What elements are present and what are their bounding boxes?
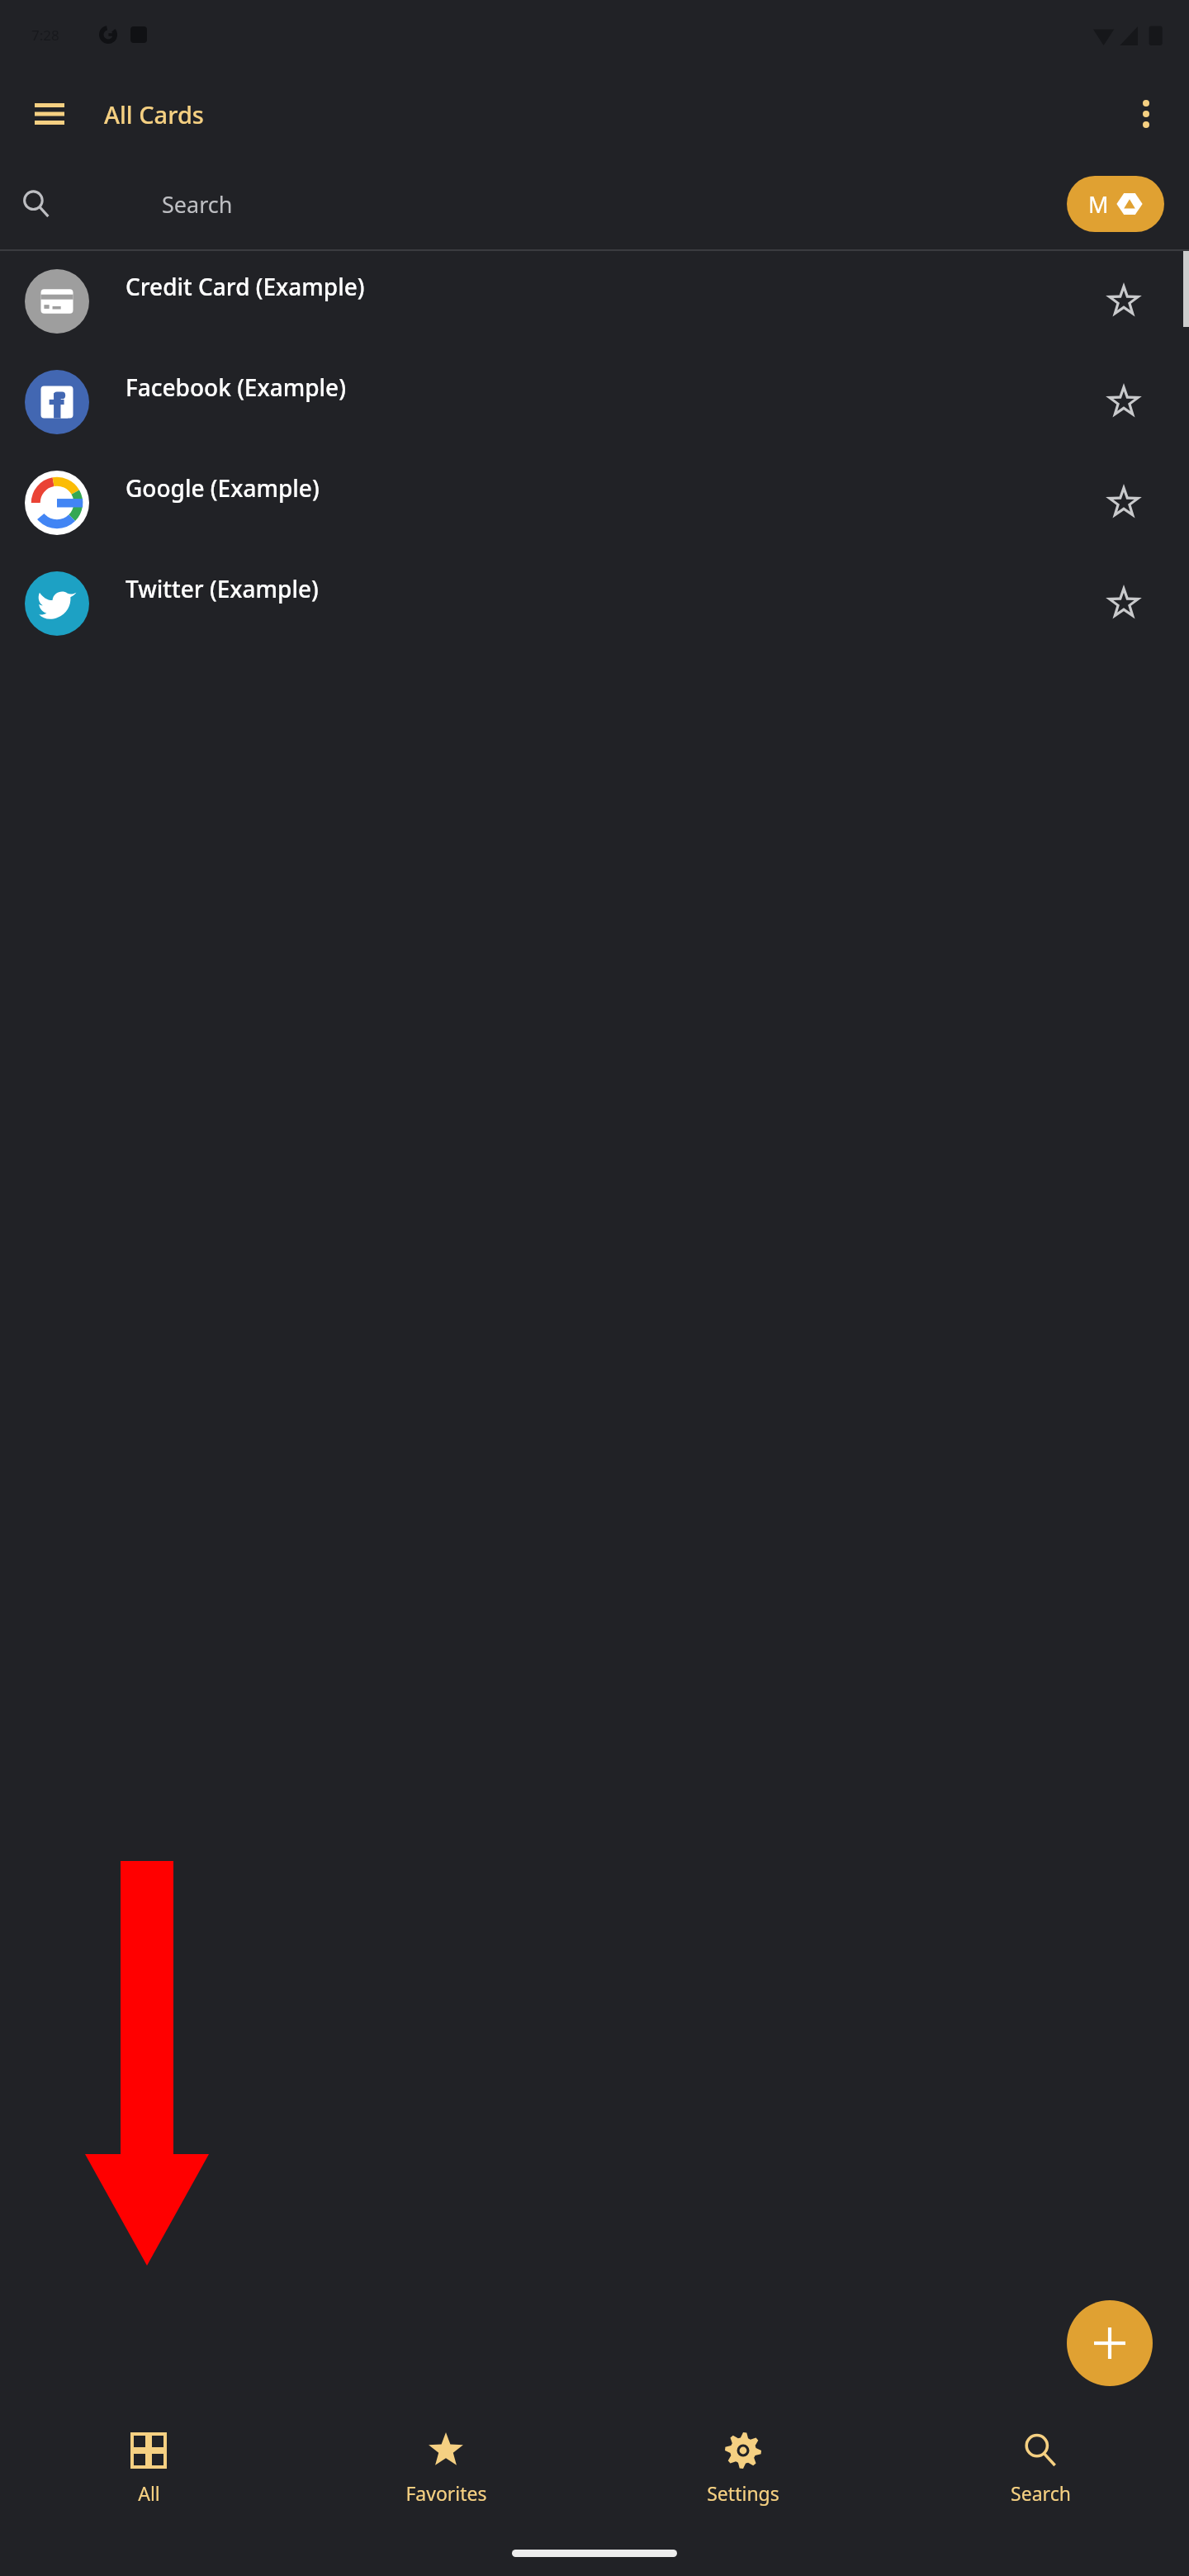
button[interactable]: Search: [0, 159, 1189, 249]
button[interactable]: Account: [1067, 176, 1164, 232]
button[interactable]: More options: [1121, 89, 1171, 139]
button[interactable]: Favorite: [1087, 566, 1161, 641]
staticText: Favorites: [405, 2480, 487, 2506]
button[interactable]: Search: [892, 2406, 1189, 2530]
button[interactable]: Favorites: [297, 2406, 594, 2530]
button[interactable]: Twitter (Example): [0, 553, 1189, 654]
button[interactable]: Credit Card (Example): [0, 251, 1189, 352]
staticText: All Cards: [104, 98, 204, 130]
button[interactable]: Favorite: [1087, 365, 1161, 439]
button[interactable]: Add card: [1067, 2300, 1153, 2386]
button[interactable]: Facebook (Example): [0, 352, 1189, 452]
staticText: All: [138, 2480, 160, 2506]
button[interactable]: Open navigation menu: [23, 88, 76, 140]
staticText: Settings: [707, 2480, 779, 2506]
staticText: Twitter (Example): [126, 573, 1087, 604]
button[interactable]: All: [0, 2406, 297, 2530]
staticText: M: [1088, 189, 1109, 220]
staticText: Search: [1011, 2480, 1071, 2506]
button[interactable]: Google (Example): [0, 452, 1189, 553]
button[interactable]: Favorite: [1087, 466, 1161, 540]
staticText: Search: [162, 189, 233, 220]
button[interactable]: Settings: [594, 2406, 892, 2530]
staticText: Google (Example): [126, 472, 1087, 504]
staticText: Credit Card (Example): [126, 271, 1087, 302]
staticText: Facebook (Example): [126, 372, 1087, 403]
button[interactable]: Favorite: [1087, 264, 1161, 339]
